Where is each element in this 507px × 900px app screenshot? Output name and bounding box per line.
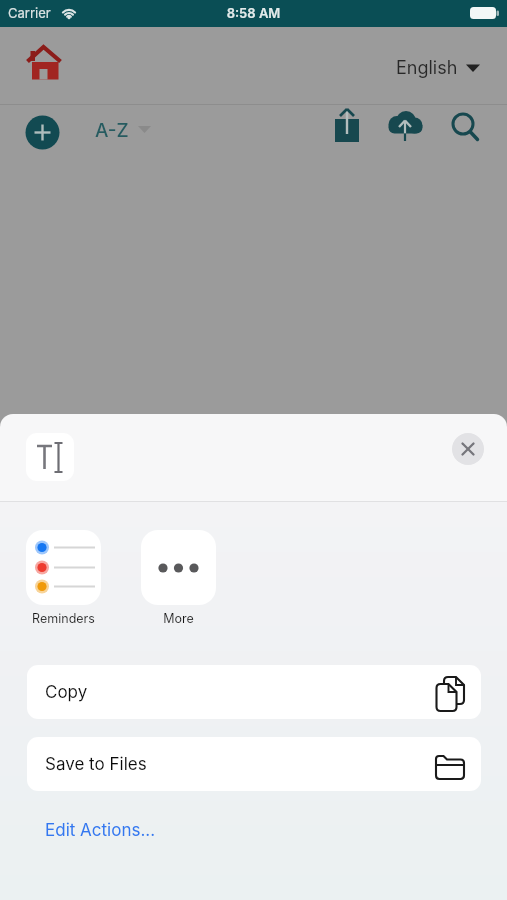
staticText: Save to Files: [45, 754, 147, 775]
staticText: Copy: [45, 682, 88, 703]
button[interactable]: [26, 530, 101, 605]
staticText: Reminders: [26, 611, 101, 626]
button[interactable]: [141, 530, 216, 605]
button[interactable]: Edit Actions...: [45, 820, 156, 841]
staticText: A-Z: [95, 119, 129, 142]
button[interactable]: [27, 45, 63, 81]
button[interactable]: [25, 115, 60, 150]
button[interactable]: [452, 433, 484, 465]
button[interactable]: Copy: [27, 665, 481, 719]
button[interactable]: [383, 105, 427, 157]
staticText: English: [396, 57, 458, 79]
staticText: More: [141, 611, 216, 626]
staticText: 8:58 AM: [0, 5, 507, 21]
staticText: Edit Actions...: [45, 820, 156, 841]
staticText: Carrier: [8, 5, 51, 21]
button[interactable]: [448, 109, 484, 151]
button[interactable]: English: [396, 57, 480, 79]
button[interactable]: Save to Files: [27, 737, 481, 791]
button[interactable]: A-Z: [93, 107, 157, 159]
button[interactable]: [330, 105, 364, 157]
